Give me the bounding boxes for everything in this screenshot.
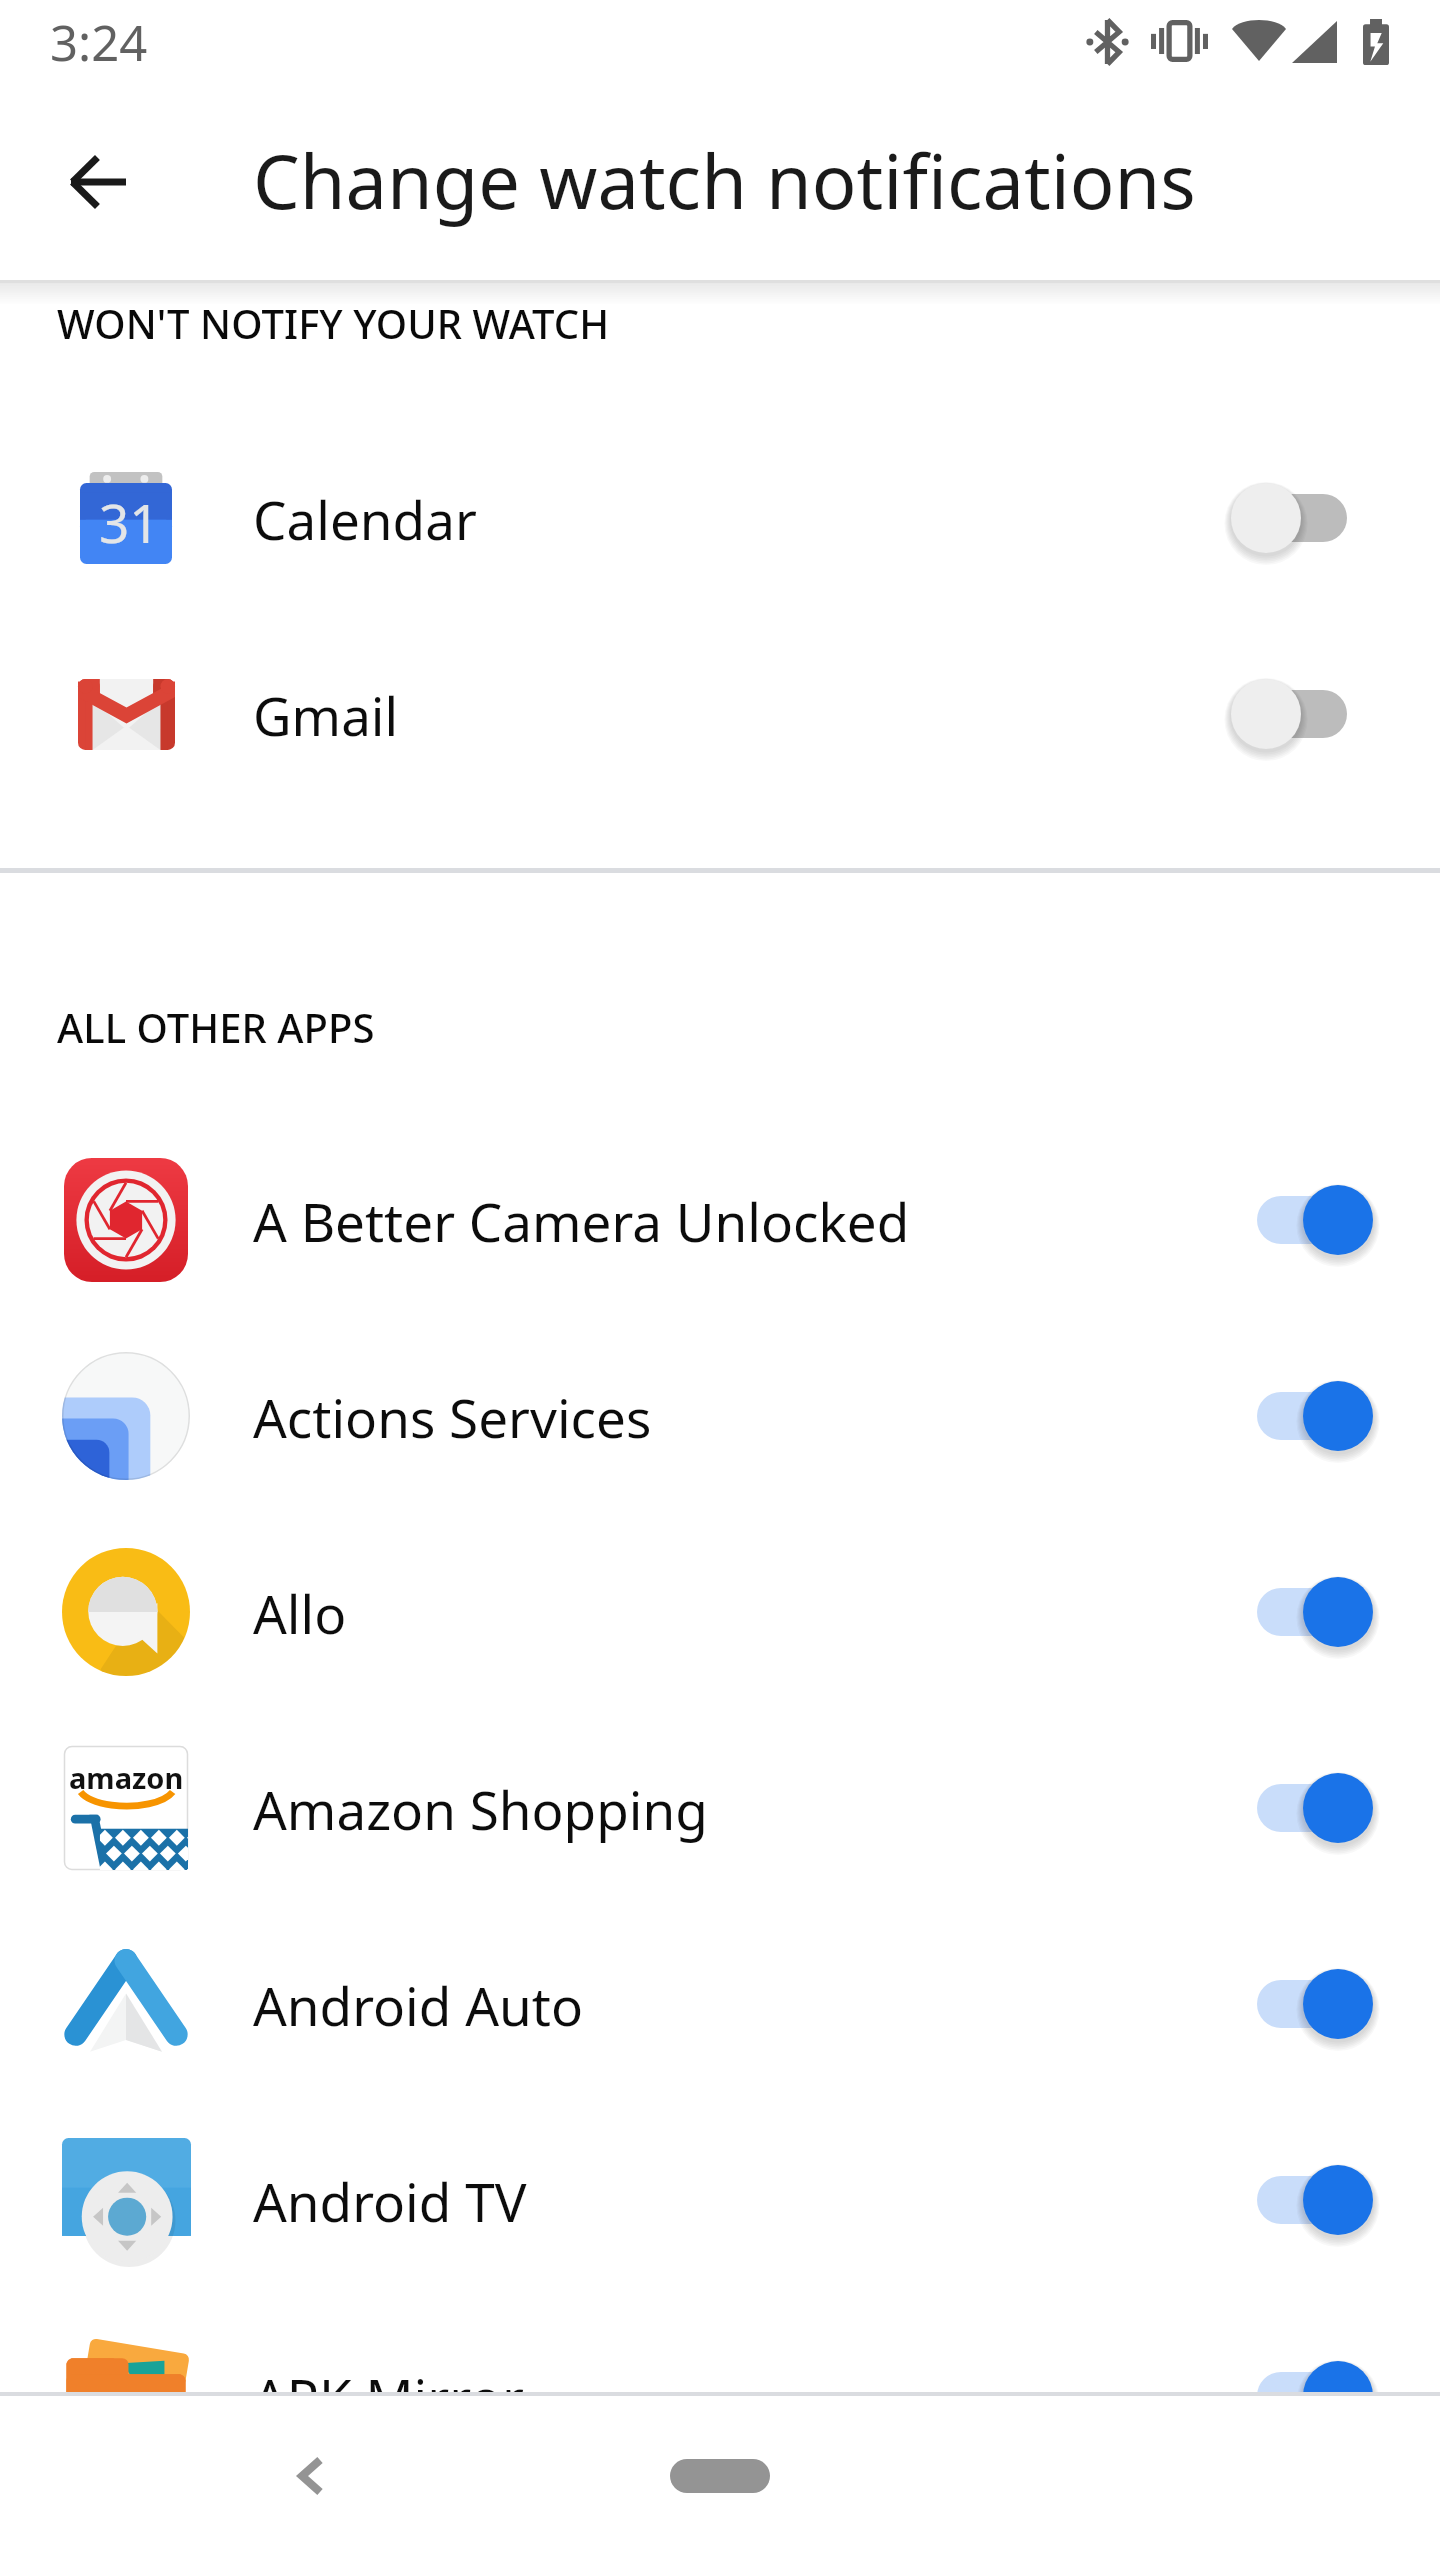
staticText: amazon: [69, 1758, 184, 1797]
staticText: Calendar: [253, 483, 1213, 555]
staticText: 31: [99, 486, 160, 558]
staticText: 3:24: [50, 9, 148, 76]
button[interactable]: Gmail: [0, 616, 1440, 812]
staticText: APK Mirror: [253, 2361, 1213, 2433]
staticText: Change watch notifications: [253, 130, 1196, 231]
button[interactable]: On: [1245, 1562, 1385, 1662]
staticText: Amazon Shopping: [253, 1773, 1213, 1845]
button[interactable]: Actions Services: [0, 1318, 1440, 1514]
button[interactable]: Off: [1245, 664, 1385, 764]
button[interactable]: Android Auto: [0, 1906, 1440, 2102]
button[interactable]: Navigate up: [28, 112, 168, 252]
staticText: Gmail: [253, 679, 1213, 751]
button[interactable]: 31: [0, 420, 1440, 616]
button[interactable]: Home: [646, 2436, 794, 2516]
staticText: ALL OTHER APPS: [57, 1000, 375, 1054]
button[interactable]: On: [1245, 1366, 1385, 1466]
staticText: WON'T NOTIFY YOUR WATCH: [57, 296, 610, 350]
staticText: A Better Camera Unlocked: [253, 1185, 1213, 1257]
staticText: Android TV: [253, 2165, 1213, 2237]
staticText: Allo: [253, 1577, 1213, 1649]
button[interactable]: amazon: [0, 1710, 1440, 1906]
button[interactable]: APK Mirror: [0, 2298, 1440, 2494]
button[interactable]: Android TV: [0, 2102, 1440, 2298]
button[interactable]: On: [1245, 2150, 1385, 2250]
button[interactable]: A Better Camera Unlocked: [0, 1122, 1440, 1318]
button[interactable]: On: [1245, 1170, 1385, 1270]
staticText: Android Auto: [253, 1969, 1213, 2041]
button[interactable]: On: [1245, 1758, 1385, 1858]
button[interactable]: On: [1245, 1954, 1385, 2054]
staticText: Actions Services: [253, 1381, 1213, 1453]
button[interactable]: Allo: [0, 1514, 1440, 1710]
button[interactable]: Back: [255, 2420, 367, 2532]
button[interactable]: On: [1245, 2346, 1385, 2446]
button[interactable]: Off: [1245, 468, 1385, 568]
